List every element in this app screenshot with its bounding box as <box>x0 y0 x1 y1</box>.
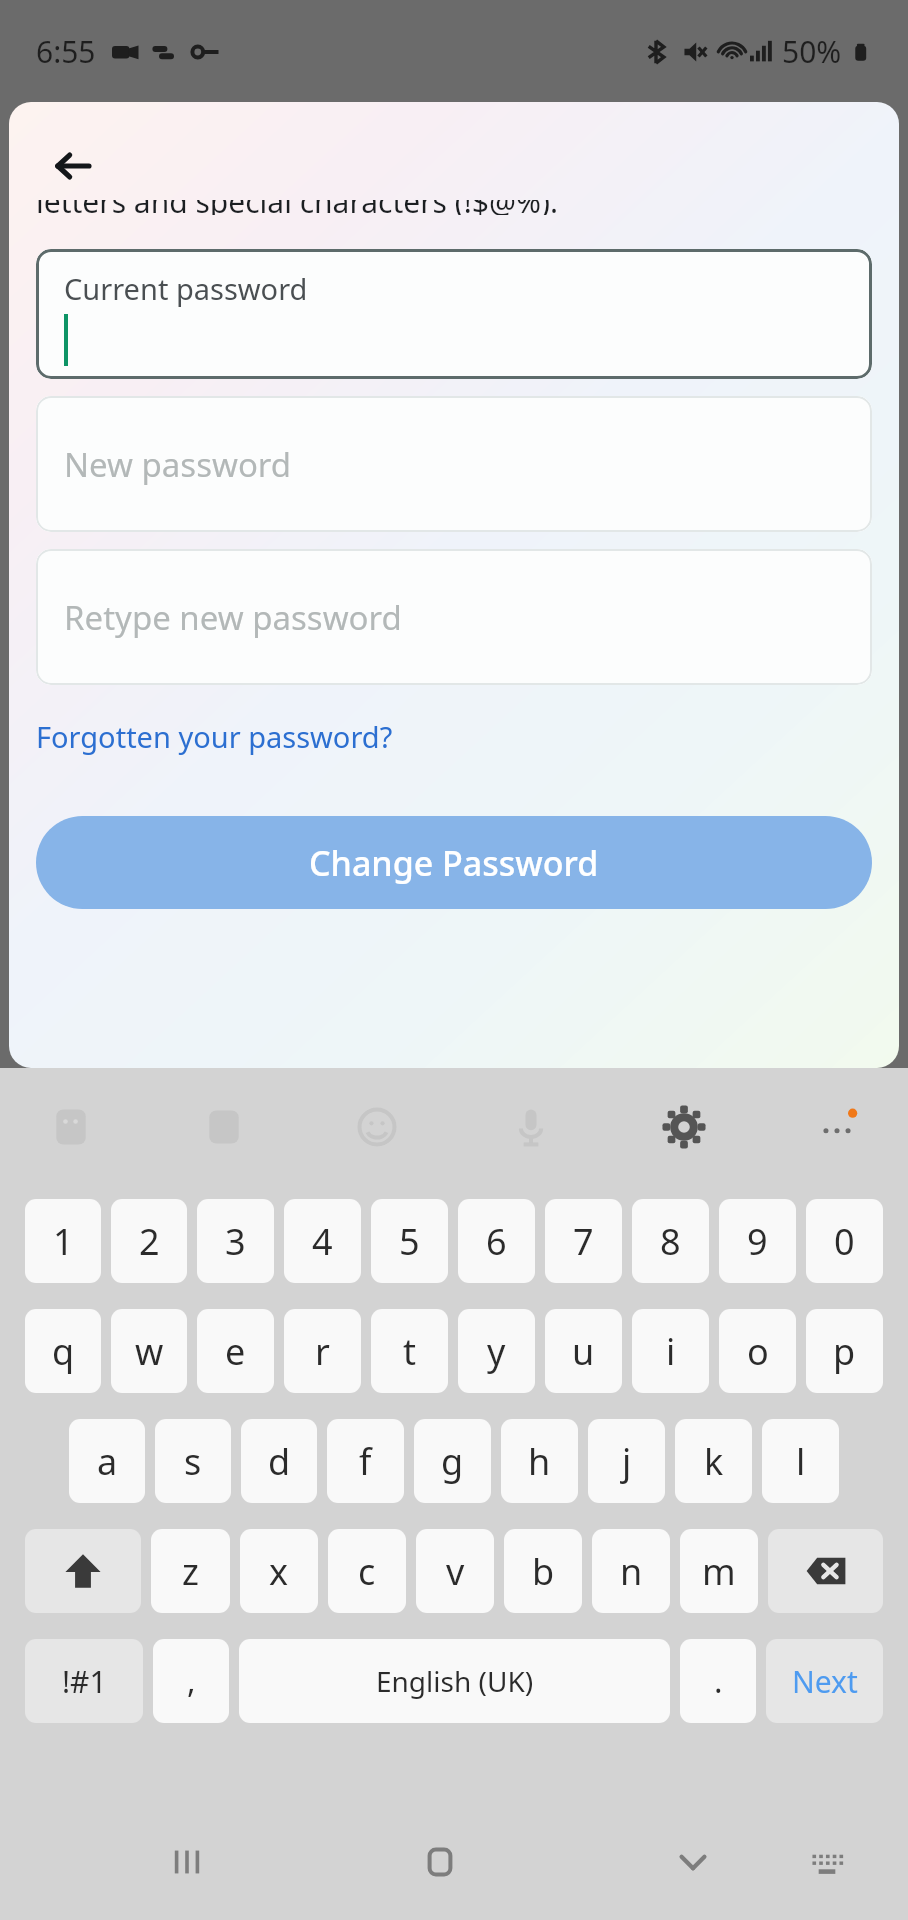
button[interactable]: n <box>592 1529 670 1613</box>
button[interactable]: GIF <box>193 1096 255 1158</box>
staticText: w <box>135 1327 164 1376</box>
staticText: New password <box>64 442 292 487</box>
button[interactable]: 9 <box>719 1199 796 1283</box>
button[interactable]: c <box>328 1529 406 1613</box>
button[interactable]: 8 <box>632 1199 709 1283</box>
button[interactable]: Home <box>403 1825 477 1899</box>
staticText: p <box>833 1327 856 1376</box>
button[interactable]: Hide keyboard <box>656 1825 730 1899</box>
button[interactable]: Switch keyboard <box>790 1825 864 1899</box>
staticText: k <box>704 1437 724 1486</box>
staticText: d <box>268 1437 291 1486</box>
staticText: Next <box>792 1661 858 1702</box>
button[interactable]: Backspace <box>768 1529 883 1613</box>
button[interactable]: o <box>719 1309 796 1393</box>
button[interactable]: v <box>416 1529 494 1613</box>
staticText: q <box>52 1327 75 1376</box>
button[interactable]: 2 <box>111 1199 187 1283</box>
staticText: 3 <box>225 1217 246 1266</box>
button[interactable]: z <box>151 1529 230 1613</box>
staticText: Retype new password <box>64 595 402 640</box>
staticText: 9 <box>747 1217 768 1266</box>
button[interactable]: g <box>414 1419 491 1503</box>
button[interactable]: 5 <box>371 1199 448 1283</box>
staticText: e <box>225 1327 246 1376</box>
staticText: 5 <box>399 1217 420 1266</box>
button[interactable]: p <box>806 1309 883 1393</box>
staticText: o <box>747 1327 769 1376</box>
button[interactable]: h <box>501 1419 578 1503</box>
button[interactable]: Change Password <box>36 816 872 909</box>
button[interactable]: Keyboard settings <box>653 1096 715 1158</box>
staticText: letters and special characters (!$@%). <box>36 200 558 215</box>
staticText: 2 <box>139 1217 160 1266</box>
staticText: r <box>315 1327 330 1376</box>
button[interactable]: f <box>327 1419 404 1503</box>
button[interactable]: i <box>632 1309 709 1393</box>
button[interactable]: s <box>155 1419 231 1503</box>
button[interactable]: l <box>762 1419 839 1503</box>
button[interactable]: k <box>675 1419 752 1503</box>
button[interactable]: e <box>197 1309 274 1393</box>
staticText: z <box>182 1547 199 1596</box>
button[interactable]: r <box>284 1309 361 1393</box>
button[interactable]: w <box>111 1309 187 1393</box>
staticText: a <box>97 1437 118 1486</box>
staticText: y <box>487 1327 506 1376</box>
button[interactable]: q <box>25 1309 101 1393</box>
button[interactable]: Retype new password <box>36 549 872 685</box>
staticText: !#1 <box>62 1661 107 1702</box>
button[interactable]: t <box>371 1309 448 1393</box>
button[interactable]: 1 <box>25 1199 101 1283</box>
staticText: n <box>620 1547 643 1596</box>
button[interactable]: More options <box>806 1096 868 1158</box>
button[interactable]: 3 <box>197 1199 274 1283</box>
staticText: h <box>528 1437 551 1486</box>
staticText: English (UK) <box>376 1662 534 1700</box>
button[interactable]: !#1 <box>25 1639 143 1723</box>
staticText: 6:55 <box>36 31 96 72</box>
staticText: v <box>446 1547 465 1596</box>
button[interactable]: 7 <box>545 1199 622 1283</box>
button[interactable]: m <box>680 1529 758 1613</box>
button[interactable]: Emoji <box>346 1096 408 1158</box>
staticText: , <box>187 1659 196 1703</box>
button[interactable]: Next <box>766 1639 883 1723</box>
button[interactable]: Voice input <box>500 1096 562 1158</box>
staticText: c <box>358 1547 376 1596</box>
button[interactable]: New password <box>36 396 872 532</box>
button[interactable]: 6 <box>458 1199 535 1283</box>
staticText: s <box>184 1437 202 1486</box>
button[interactable]: English (UK) <box>239 1639 670 1723</box>
button[interactable]: . <box>680 1639 756 1723</box>
staticText: 6 <box>486 1217 507 1266</box>
button[interactable]: Back <box>39 132 107 200</box>
staticText: . <box>714 1659 723 1703</box>
staticText: 7 <box>573 1217 594 1266</box>
button[interactable]: u <box>545 1309 622 1393</box>
staticText: 8 <box>660 1217 681 1266</box>
staticText: 50% <box>782 31 842 72</box>
button[interactable]: 4 <box>284 1199 361 1283</box>
button[interactable]: y <box>458 1309 535 1393</box>
staticText: x <box>269 1547 289 1596</box>
staticText: Current password <box>64 269 308 308</box>
staticText: b <box>532 1547 555 1596</box>
button[interactable]: 0 <box>806 1199 883 1283</box>
staticText: t <box>403 1327 416 1376</box>
button[interactable]: Current password <box>36 249 872 379</box>
button[interactable]: d <box>241 1419 317 1503</box>
button[interactable]: Stickers <box>40 1096 102 1158</box>
button[interactable]: x <box>240 1529 318 1613</box>
button[interactable]: j <box>588 1419 665 1503</box>
staticText: m <box>702 1547 736 1596</box>
button[interactable]: Recents <box>150 1825 224 1899</box>
button[interactable]: Shift <box>25 1529 141 1613</box>
staticText: Forgotten your password? <box>36 717 393 756</box>
button[interactable]: a <box>69 1419 145 1503</box>
button[interactable]: Forgotten your password? <box>36 717 393 756</box>
button[interactable]: b <box>504 1529 582 1613</box>
button[interactable]: , <box>153 1639 229 1723</box>
staticText: f <box>359 1437 372 1486</box>
staticText: i <box>666 1327 676 1376</box>
